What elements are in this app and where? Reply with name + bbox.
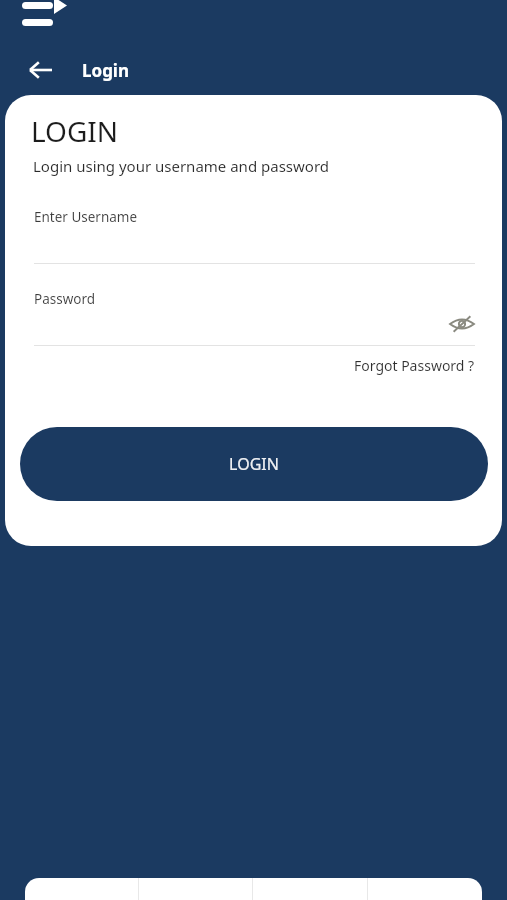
staticText: Login [82,59,130,82]
button[interactable]: LOGIN [20,427,488,501]
button[interactable]: Tab 4 [368,878,482,900]
button[interactable]: Enter Username [5,208,502,264]
staticText: LOGIN [229,453,279,475]
staticText: LOGIN [31,112,119,150]
button[interactable]: Forgot Password ? [354,356,475,375]
staticText: Enter Username [34,208,138,226]
staticText: Password [34,290,96,308]
button[interactable]: Show password [444,306,480,342]
button[interactable]: Open navigation menu [22,0,72,32]
button[interactable]: Password [5,290,502,308]
staticText: Forgot Password ? [354,356,475,375]
staticText: Login using your username and password [33,156,329,176]
button[interactable]: Tab 1 [25,878,138,900]
button[interactable]: Back [24,53,58,87]
